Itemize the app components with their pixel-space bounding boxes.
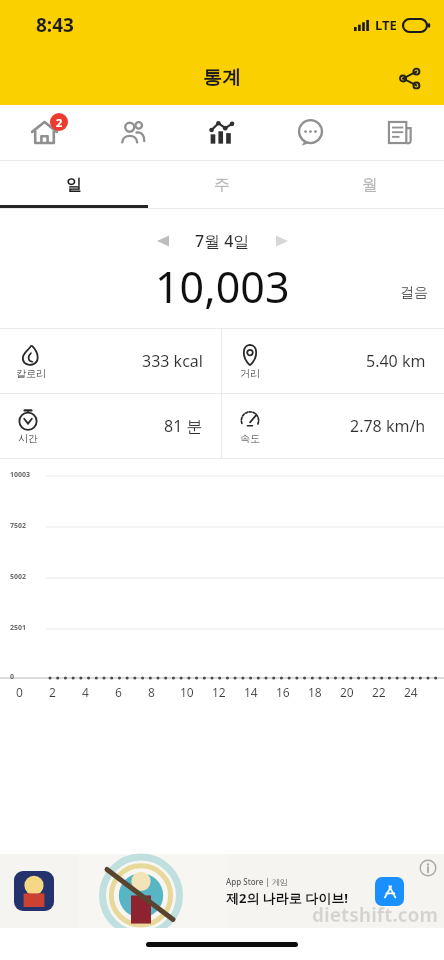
button[interactable]: Open App Store (375, 877, 404, 906)
staticText: 2.78 km/h (350, 415, 426, 437)
staticText: 속도 (240, 432, 260, 445)
staticText: 24 (404, 684, 418, 700)
staticText: 5002 (10, 572, 27, 582)
button[interactable]: 칼로리 (0, 329, 221, 393)
staticText: 칼로리 (16, 367, 46, 380)
staticText: App Store | 게임 (226, 876, 288, 887)
staticText: 8 (148, 684, 155, 700)
staticText: 18 (308, 684, 322, 700)
button[interactable]: Friends (88, 105, 177, 160)
staticText: 거리 (240, 367, 260, 380)
staticText: 8:43 (36, 12, 74, 38)
staticText: 제2의 나라로 다이브! (226, 889, 348, 907)
button[interactable]: 속도 (222, 394, 444, 458)
staticText: 7502 (10, 521, 27, 531)
button[interactable]: Next day (266, 225, 298, 257)
button[interactable]: 월 (296, 161, 444, 208)
staticText: 10 (180, 684, 194, 700)
staticText: dietshift.com (312, 902, 438, 928)
button[interactable]: Ad information (419, 859, 437, 877)
staticText: 81 분 (164, 415, 203, 437)
button[interactable]: 거리 (222, 329, 444, 393)
staticText: 333 kcal (142, 350, 203, 372)
staticText: 7월 4일 (195, 230, 250, 252)
staticText: 4 (82, 684, 89, 700)
staticText: 22 (372, 684, 386, 700)
button[interactable]: 주 (148, 161, 296, 208)
staticText: 2 (49, 684, 56, 700)
staticText: LTE (375, 16, 397, 34)
staticText: 일 (66, 175, 82, 195)
staticText: 0 (16, 684, 23, 700)
staticText: 5.40 km (366, 350, 426, 372)
staticText: 2 (56, 115, 63, 130)
staticText: 10,003 (155, 257, 290, 313)
staticText: 12 (212, 684, 226, 700)
staticText: 10003 (10, 470, 31, 480)
staticText: 2501 (10, 623, 27, 633)
staticText: 주 (214, 175, 230, 195)
staticText: 16 (276, 684, 290, 700)
button[interactable]: Chat (266, 105, 355, 160)
staticText: 시간 (18, 432, 38, 445)
button[interactable]: Previous day (147, 225, 179, 257)
button[interactable]: App Store | 게임 (0, 854, 444, 928)
button[interactable]: 시간 (0, 394, 221, 458)
staticText: 14 (244, 684, 258, 700)
staticText: 20 (340, 684, 354, 700)
staticText: 통계 (203, 66, 241, 90)
staticText: 0 (10, 672, 15, 682)
button[interactable]: Share (386, 55, 432, 101)
staticText: 6 (115, 684, 122, 700)
button[interactable]: Home (0, 105, 88, 160)
staticText: 월 (362, 175, 378, 195)
button[interactable]: Statistics (177, 105, 266, 160)
button[interactable]: 일 (0, 161, 148, 208)
button[interactable]: News (355, 105, 444, 160)
staticText: 걸음 (400, 284, 428, 302)
